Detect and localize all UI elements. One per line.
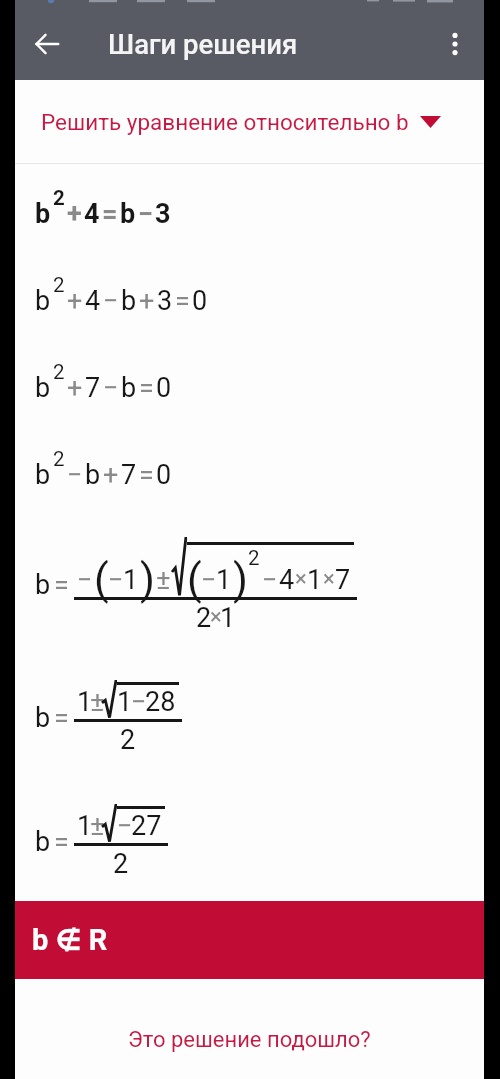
staticText: b xyxy=(35,198,51,230)
staticText: b xyxy=(35,826,51,858)
staticText: 0 xyxy=(156,372,172,404)
staticText: b ∉ R xyxy=(32,923,108,957)
staticText: 2 xyxy=(53,447,65,471)
staticText: − xyxy=(103,372,119,404)
staticText: 2 xyxy=(196,602,212,634)
staticText: 2 xyxy=(53,360,65,384)
button[interactable]: Решить уравнение относительно b xyxy=(15,80,484,163)
button[interactable]: Back xyxy=(15,8,79,80)
staticText: − xyxy=(201,564,217,596)
staticText: b xyxy=(35,285,51,317)
staticText: 3 xyxy=(157,285,173,317)
staticText: 2 xyxy=(53,273,65,297)
staticText: − xyxy=(138,198,153,230)
staticText: ) xyxy=(140,554,155,604)
staticText: b xyxy=(85,459,101,491)
staticText: ± xyxy=(90,686,105,718)
staticText: ( xyxy=(94,554,109,604)
staticText: 1 xyxy=(117,686,133,718)
staticText: = xyxy=(175,285,190,317)
button[interactable]: Это решение подошло? xyxy=(128,1027,371,1053)
staticText: = xyxy=(102,198,118,230)
staticText: − xyxy=(131,686,147,718)
staticText: 28 xyxy=(145,686,176,718)
staticText: 4 xyxy=(279,564,295,596)
staticText: = xyxy=(139,372,154,404)
staticText: b xyxy=(35,569,51,601)
staticText: ) xyxy=(233,554,248,604)
staticText: b xyxy=(35,372,51,404)
button[interactable]: More options xyxy=(426,8,484,80)
staticText: b xyxy=(35,459,51,491)
staticText: − xyxy=(103,285,119,317)
staticText: × xyxy=(210,604,222,630)
staticText: 7 xyxy=(121,459,137,491)
staticText: 1 xyxy=(123,564,139,596)
staticText: 4 xyxy=(85,285,101,317)
staticText: 7 xyxy=(85,372,101,404)
staticText: 1 xyxy=(216,564,232,596)
staticText: 1 xyxy=(77,686,93,718)
staticText: 4 xyxy=(84,198,100,230)
staticText: Шаги решения xyxy=(108,28,298,60)
staticText: − xyxy=(108,564,124,596)
staticText: = xyxy=(54,569,69,601)
staticText: 1 xyxy=(220,602,236,634)
staticText: = xyxy=(139,459,154,491)
staticText: ± xyxy=(156,564,171,596)
staticText: b xyxy=(121,372,137,404)
staticText: b xyxy=(35,702,51,734)
staticText: ( xyxy=(187,554,202,604)
staticText: 1 xyxy=(307,564,323,596)
staticText: + xyxy=(67,198,82,230)
staticText: 2 xyxy=(53,186,65,210)
staticText: − xyxy=(262,564,278,596)
staticText: 3 xyxy=(155,198,171,230)
staticText: 2 xyxy=(120,724,136,756)
staticText: Решить уравнение относительно b xyxy=(41,109,409,135)
staticText: 1 xyxy=(77,810,93,842)
staticText: + xyxy=(139,285,155,317)
staticText: + xyxy=(103,459,119,491)
staticText: = xyxy=(54,826,69,858)
staticText: × xyxy=(323,566,335,592)
staticText: 2 xyxy=(248,546,260,570)
staticText: = xyxy=(54,702,69,734)
staticText: + xyxy=(67,285,83,317)
staticText: 27 xyxy=(131,810,162,842)
staticText: ± xyxy=(90,810,105,842)
staticText: − xyxy=(77,564,93,596)
staticText: × xyxy=(295,566,307,592)
staticText: + xyxy=(67,372,83,404)
staticText: 0 xyxy=(156,459,172,491)
staticText: − xyxy=(117,810,133,842)
staticText: 7 xyxy=(335,564,351,596)
staticText: b xyxy=(121,285,137,317)
staticText: 0 xyxy=(192,285,208,317)
staticText: 2 xyxy=(113,848,129,880)
staticText: b xyxy=(120,198,136,230)
staticText: − xyxy=(67,459,83,491)
